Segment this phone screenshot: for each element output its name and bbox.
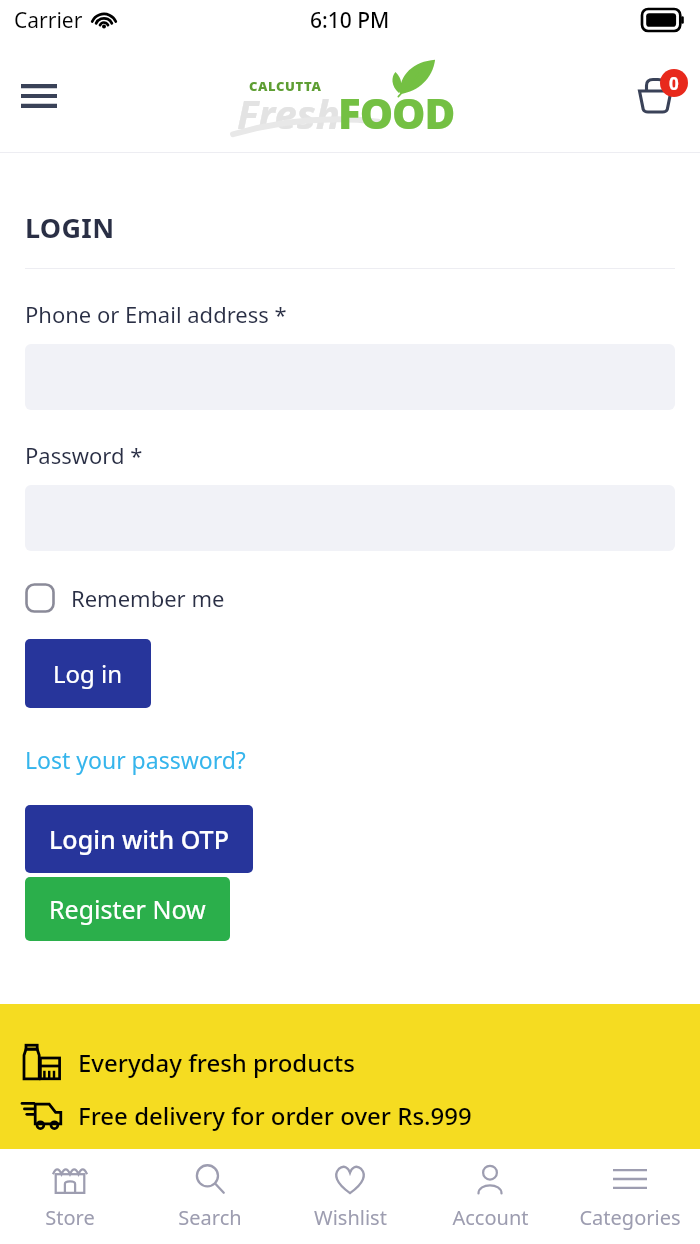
staticText: Log in <box>53 657 123 690</box>
button[interactable]: Search <box>140 1149 280 1244</box>
staticText: LOGIN <box>25 209 115 246</box>
button[interactable]: Cart <box>628 66 688 126</box>
button[interactable]: Categories <box>560 1149 700 1244</box>
button[interactable]: Menu <box>12 69 66 123</box>
button[interactable]: Wishlist <box>280 1149 420 1244</box>
staticText: Password * <box>25 440 143 470</box>
staticText: Search <box>178 1204 242 1231</box>
staticText: FOODS <box>338 84 475 137</box>
staticText: 6:10 PM <box>310 6 390 35</box>
staticText: Carrier <box>14 6 83 35</box>
button[interactable]: Store <box>0 1149 140 1244</box>
staticText: Free delivery for order over Rs.999 <box>78 1099 472 1132</box>
staticText: Wishlist <box>314 1204 387 1231</box>
button[interactable]: Login with OTP <box>25 805 253 873</box>
staticText: Phone or Email address * <box>25 299 287 329</box>
staticText: Categories <box>579 1204 681 1231</box>
button[interactable]: Register Now <box>25 877 230 941</box>
staticText: Lost your password? <box>25 744 246 775</box>
button[interactable]: Remember me <box>25 579 225 617</box>
staticText: Fresh <box>237 86 340 137</box>
staticText: Everyday fresh products <box>78 1046 355 1079</box>
button[interactable]: Account <box>420 1149 560 1244</box>
staticText: Login with OTP <box>49 822 229 856</box>
staticText: Account <box>452 1204 529 1231</box>
staticText: Remember me <box>71 583 225 613</box>
staticText: 0 <box>669 72 679 95</box>
button[interactable]: Log in <box>25 639 151 708</box>
staticText: Store <box>45 1204 95 1231</box>
staticText: CALCUTTA <box>249 77 322 95</box>
staticText: Register Now <box>49 892 206 926</box>
button[interactable]: Lost your password? <box>25 744 246 775</box>
